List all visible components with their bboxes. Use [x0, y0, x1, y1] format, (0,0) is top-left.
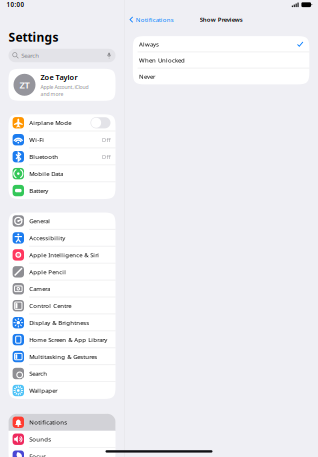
button[interactable]: Focus — [8, 448, 115, 457]
staticText: Wi-Fi — [29, 136, 44, 144]
button[interactable]: ZT — [8, 69, 115, 101]
button[interactable]: Airplane Mode — [8, 114, 115, 131]
button[interactable]: Notifications — [8, 414, 115, 431]
button[interactable]: Wallpaper — [8, 382, 115, 399]
button[interactable]: Battery — [8, 182, 115, 199]
staticText: Notifications — [136, 15, 174, 24]
staticText: When Unlocked — [139, 56, 185, 64]
button[interactable]: General — [8, 212, 115, 229]
button[interactable]: Display & Brightness — [8, 314, 115, 331]
staticText: Camera — [29, 285, 50, 293]
button[interactable]: Control Centre — [8, 297, 115, 314]
button[interactable]: Home Screen & App Library — [8, 331, 115, 348]
staticText: General — [29, 217, 50, 225]
button[interactable]: Notifications — [125, 11, 179, 28]
staticText: Never — [139, 72, 155, 80]
staticText: Zoe Taylor — [40, 72, 77, 82]
staticText: Apple Pencil — [29, 268, 66, 276]
staticText: Focus — [29, 452, 46, 457]
staticText: Sounds — [29, 435, 51, 443]
staticText: Search — [21, 51, 39, 60]
button[interactable]: When Unlocked — [133, 52, 309, 68]
staticText: Always — [139, 40, 159, 48]
staticText: Settings — [8, 29, 58, 45]
button[interactable]: Wi-Fi — [8, 131, 115, 148]
staticText: Off — [101, 153, 110, 161]
staticText: Wallpaper — [29, 386, 57, 395]
staticText: Mobile Data — [29, 169, 63, 178]
button[interactable]: Search — [8, 365, 115, 382]
staticText: Show Previews — [200, 15, 243, 24]
button[interactable]: Sounds — [8, 431, 115, 448]
staticText: Battery — [29, 186, 48, 195]
button[interactable]: Apple Pencil — [8, 263, 115, 280]
button[interactable]: Apple Intelligence & Siri — [8, 246, 115, 263]
staticText: Accessibility — [29, 234, 65, 242]
button[interactable]: Always — [133, 36, 309, 52]
staticText: Bluetooth — [29, 153, 58, 161]
staticText: Off — [101, 136, 110, 144]
button[interactable]: Mobile Data — [8, 165, 115, 182]
staticText: Notifications — [29, 418, 67, 426]
staticText: Display & Brightness — [29, 319, 89, 327]
staticText: ZT — [19, 78, 29, 91]
button[interactable]: Bluetooth — [8, 148, 115, 165]
staticText: Search — [29, 369, 47, 378]
staticText: and more — [40, 91, 63, 97]
button[interactable]: Multitasking & Gestures — [8, 348, 115, 365]
button[interactable]: Never — [133, 68, 309, 84]
staticText: 10:00 — [7, 0, 25, 9]
staticText: Apple Intelligence & Siri — [29, 251, 99, 259]
staticText: Airplane Mode — [29, 119, 71, 127]
staticText: Home Screen & App Library — [29, 335, 107, 344]
staticText: Apple Account, iCloud — [40, 84, 88, 91]
button[interactable]: Camera — [8, 280, 115, 297]
button[interactable]: Accessibility — [8, 229, 115, 246]
staticText: Multitasking & Gestures — [29, 352, 97, 361]
staticText: Control Centre — [29, 302, 71, 310]
